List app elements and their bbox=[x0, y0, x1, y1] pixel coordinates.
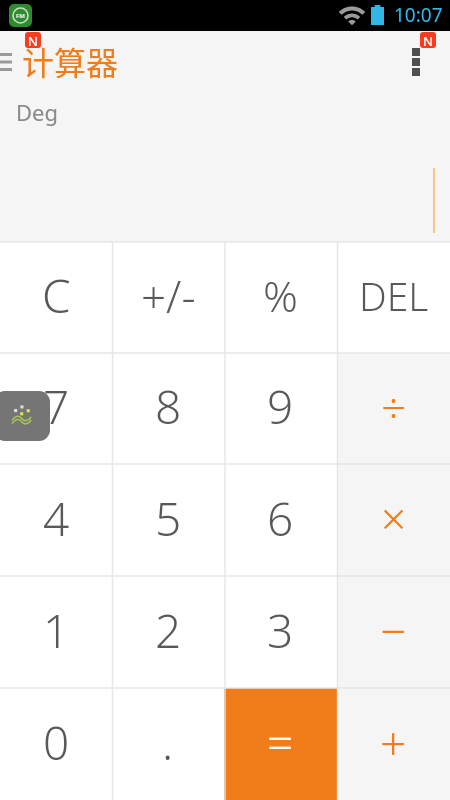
staticText: 2 bbox=[155, 599, 182, 662]
button[interactable]: +/- bbox=[112, 242, 224, 353]
button[interactable]: 8 bbox=[112, 353, 224, 464]
button[interactable]: 0 bbox=[0, 688, 112, 800]
button[interactable]: % bbox=[224, 242, 337, 353]
staticText: N bbox=[423, 32, 433, 48]
staticText: = bbox=[267, 711, 294, 774]
staticText: FM bbox=[16, 12, 25, 20]
button[interactable]: × bbox=[337, 464, 450, 576]
button[interactable]: − bbox=[337, 576, 450, 688]
button[interactable]: 7 bbox=[0, 353, 112, 464]
staticText: + bbox=[380, 711, 407, 774]
staticText: 4 bbox=[43, 487, 70, 550]
staticText: 5 bbox=[155, 487, 182, 550]
staticText: 1 bbox=[43, 599, 70, 662]
staticText: 0 bbox=[43, 711, 70, 774]
button[interactable]: C bbox=[0, 242, 112, 353]
staticText: +/- bbox=[141, 266, 196, 326]
button[interactable]: More options bbox=[406, 35, 450, 95]
staticText: 8 bbox=[155, 375, 182, 438]
button[interactable]: 6 bbox=[224, 464, 337, 576]
staticText: ÷ bbox=[381, 377, 407, 437]
staticText: DEL bbox=[359, 269, 429, 322]
staticText: 3 bbox=[267, 599, 294, 662]
staticText: 6 bbox=[267, 487, 294, 550]
staticText: . bbox=[162, 711, 174, 774]
staticText: × bbox=[381, 488, 407, 548]
staticText: 计算器 bbox=[22, 38, 119, 84]
staticText: 9 bbox=[267, 375, 294, 438]
staticText: N bbox=[28, 32, 38, 48]
button[interactable]: 3 bbox=[224, 576, 337, 688]
staticText: 7 bbox=[43, 375, 70, 438]
button[interactable]: . bbox=[112, 688, 224, 800]
button[interactable]: 4 bbox=[0, 464, 112, 576]
staticText: − bbox=[380, 599, 407, 662]
button[interactable]: 5 bbox=[112, 464, 224, 576]
button[interactable]: 2 bbox=[112, 576, 224, 688]
button[interactable]: = bbox=[224, 688, 337, 800]
staticText: 10:07 bbox=[394, 2, 443, 28]
button[interactable]: Menu bbox=[0, 41, 24, 83]
button[interactable]: 1 bbox=[0, 576, 112, 688]
button[interactable]: DEL bbox=[337, 242, 450, 353]
button[interactable]: ÷ bbox=[337, 353, 450, 464]
staticText: Deg bbox=[16, 97, 58, 127]
button[interactable]: 9 bbox=[224, 353, 337, 464]
button[interactable]: + bbox=[337, 688, 450, 800]
staticText: C bbox=[42, 264, 71, 327]
staticText: % bbox=[263, 266, 298, 325]
